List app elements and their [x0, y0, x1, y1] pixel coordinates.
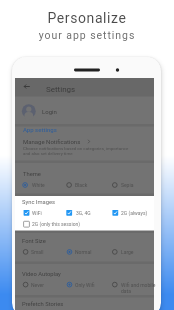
staticText: and also set delivery time — [23, 151, 73, 156]
staticText: Video Autoplay — [22, 271, 61, 278]
staticText: Theme — [23, 171, 41, 178]
staticText: Prefetch Stories — [22, 301, 64, 308]
staticText: Choose notifications based on categories… — [23, 146, 129, 151]
staticText: Sepia — [121, 182, 134, 188]
staticText: WiFi — [32, 210, 42, 216]
staticText: Normal — [75, 249, 92, 255]
staticText: 2G (always) — [121, 210, 148, 216]
staticText: 2G (only this session) — [32, 221, 80, 227]
staticText: 3G, 4G — [76, 210, 91, 216]
staticText: Login — [42, 108, 57, 115]
staticText: Wifi and mobile data — [121, 282, 156, 294]
staticText: Personalize — [0, 10, 174, 26]
staticText: Font Size — [22, 238, 46, 245]
staticText: Settings — [46, 85, 76, 94]
staticText: your app settings — [0, 29, 174, 41]
staticText: Small — [31, 249, 44, 255]
staticText: Sync Images — [22, 199, 55, 206]
staticText: Manage Notifications — [23, 138, 81, 145]
staticText: Black — [75, 182, 88, 188]
staticText: Never — [31, 282, 44, 288]
staticText: Only Wifi — [75, 282, 95, 288]
staticText: Large — [121, 249, 134, 255]
staticText: App settings — [23, 126, 57, 133]
staticText: White — [32, 182, 45, 188]
